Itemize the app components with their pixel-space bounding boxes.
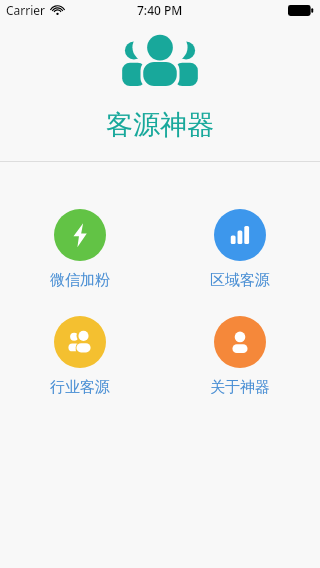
staticText: 客源神器 xyxy=(106,108,214,142)
button[interactable]: 行业客源 xyxy=(36,314,124,399)
staticText: 区域客源 xyxy=(210,271,270,290)
staticText: 7:40 PM xyxy=(137,2,183,18)
staticText: Carrier xyxy=(6,2,46,18)
staticText: 关于神器 xyxy=(210,378,270,397)
button[interactable]: 关于神器 xyxy=(196,314,284,399)
staticText: 微信加粉 xyxy=(50,271,110,290)
other: App logo xyxy=(121,33,199,86)
button[interactable]: 微信加粉 xyxy=(36,207,124,292)
button[interactable]: 区域客源 xyxy=(196,207,284,292)
staticText: 行业客源 xyxy=(50,378,110,397)
